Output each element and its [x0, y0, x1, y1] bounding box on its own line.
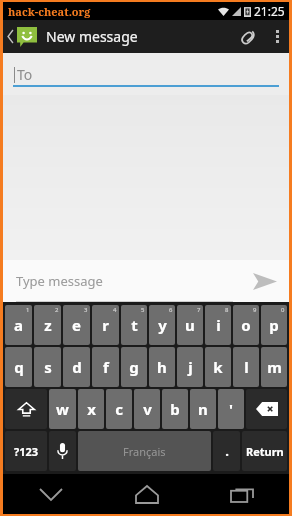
button[interactable]: q	[5, 347, 32, 387]
staticText: x	[87, 399, 96, 419]
button[interactable]: Attach	[231, 20, 265, 53]
button[interactable]: b	[162, 389, 188, 429]
staticText: z	[44, 315, 52, 335]
staticText: 6	[169, 306, 173, 314]
staticText: n	[198, 399, 208, 419]
staticText: .	[225, 442, 229, 460]
button[interactable]: t	[121, 305, 147, 345]
button[interactable]: h	[149, 347, 175, 387]
button[interactable]: Recent apps	[194, 474, 289, 514]
staticText: '	[229, 399, 233, 419]
button[interactable]: p	[261, 305, 287, 345]
staticText: 8	[225, 306, 229, 314]
button[interactable]: Return	[242, 431, 287, 471]
staticText: 5	[141, 306, 145, 314]
button[interactable]: s	[34, 347, 61, 387]
button[interactable]: Send	[241, 260, 289, 302]
staticText: q	[14, 357, 24, 377]
button[interactable]: Hide keyboard	[3, 474, 99, 514]
staticText: y	[158, 315, 167, 335]
button[interactable]: y	[149, 305, 175, 345]
staticText: s	[44, 357, 52, 377]
button[interactable]: z	[34, 305, 61, 345]
button[interactable]: n	[190, 389, 216, 429]
staticText: f	[103, 357, 109, 377]
staticText: p	[269, 315, 279, 335]
staticText: w	[56, 399, 69, 419]
staticText: a	[14, 315, 23, 335]
staticText: 9	[253, 306, 257, 314]
button[interactable]: j	[177, 347, 203, 387]
staticText: b	[170, 399, 180, 419]
staticText: d	[72, 357, 82, 377]
button[interactable]: g	[121, 347, 147, 387]
button[interactable]: d	[63, 347, 90, 387]
staticText: Return	[246, 444, 284, 459]
button[interactable]: w	[49, 389, 76, 429]
button[interactable]: l	[233, 347, 259, 387]
staticText: o	[241, 315, 251, 335]
staticText: u	[185, 315, 195, 335]
button[interactable]: Navigate up, Messaging	[3, 20, 41, 53]
button[interactable]: m	[261, 347, 287, 387]
staticText: New message	[46, 27, 138, 46]
button[interactable]: Home	[99, 474, 194, 514]
button[interactable]: f	[92, 347, 119, 387]
button[interactable]: r	[92, 305, 119, 345]
button[interactable]: x	[78, 389, 104, 429]
staticText: 4	[113, 306, 117, 314]
button[interactable]: .	[213, 431, 240, 471]
button[interactable]: e	[63, 305, 90, 345]
staticText: Type message	[16, 272, 103, 290]
button[interactable]: Type message	[16, 260, 233, 302]
staticText: 1	[26, 306, 30, 314]
staticText: j	[188, 357, 193, 377]
staticText: 2	[55, 306, 59, 314]
staticText: 21:25	[254, 3, 285, 19]
staticText: hack-cheat.org	[8, 4, 91, 19]
button[interactable]: u	[177, 305, 203, 345]
button[interactable]: '	[218, 389, 244, 429]
staticText: 3	[84, 306, 88, 314]
button[interactable]: More options	[265, 20, 289, 53]
staticText: c	[115, 399, 123, 419]
button[interactable]: Français	[78, 431, 211, 471]
staticText: g	[129, 357, 139, 377]
staticText: Français	[123, 444, 166, 459]
staticText: h	[157, 357, 167, 377]
button[interactable]: c	[106, 389, 132, 429]
staticText: To	[17, 65, 33, 84]
staticText: ?123	[14, 444, 39, 459]
staticText: t	[131, 315, 138, 335]
button[interactable]: To	[3, 53, 289, 95]
staticText: v	[143, 399, 152, 419]
staticText: e	[72, 315, 81, 335]
staticText: k	[213, 357, 223, 377]
button[interactable]: a	[5, 305, 32, 345]
button[interactable]: v	[134, 389, 160, 429]
button[interactable]: Shift	[5, 389, 47, 429]
button[interactable]: Voice input	[49, 431, 76, 471]
button[interactable]: Delete	[246, 389, 287, 429]
button[interactable]: o	[233, 305, 259, 345]
button[interactable]: Symbols	[5, 431, 47, 471]
staticText: r	[102, 315, 109, 335]
staticText: 7	[197, 306, 201, 314]
staticText: i	[216, 315, 221, 335]
staticText: m	[267, 357, 282, 377]
button[interactable]: k	[205, 347, 231, 387]
button[interactable]: i	[205, 305, 231, 345]
staticText: l	[244, 357, 249, 377]
staticText: 0	[281, 306, 285, 314]
